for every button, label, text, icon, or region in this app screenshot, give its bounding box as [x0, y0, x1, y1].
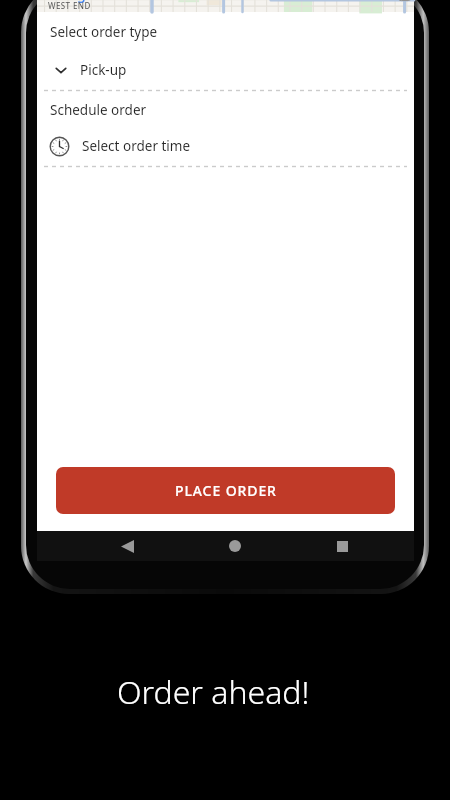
staticText: Pick-up	[80, 61, 127, 79]
staticText: Order ahead!	[117, 670, 310, 714]
staticText: l	[86, 0, 90, 4]
staticText: Schedule order	[50, 101, 147, 119]
button[interactable]: Pick-up	[37, 50, 414, 90]
staticText: Select order type	[50, 23, 158, 41]
button[interactable]: Select order time	[37, 126, 414, 166]
staticText: g	[77, 0, 86, 4]
staticText: e	[90, 0, 99, 4]
staticText: PLACE ORDER	[175, 481, 277, 500]
button[interactable]: Recent apps	[332, 536, 352, 556]
button[interactable]: PLACE ORDER	[56, 467, 395, 514]
staticText: G	[48, 0, 59, 4]
staticText: o	[68, 0, 77, 4]
staticText: Select order time	[82, 137, 191, 155]
staticText: o	[59, 0, 68, 4]
staticText: WEST END	[48, 0, 91, 11]
button[interactable]: Home	[225, 536, 245, 556]
button[interactable]: Back	[117, 536, 137, 556]
